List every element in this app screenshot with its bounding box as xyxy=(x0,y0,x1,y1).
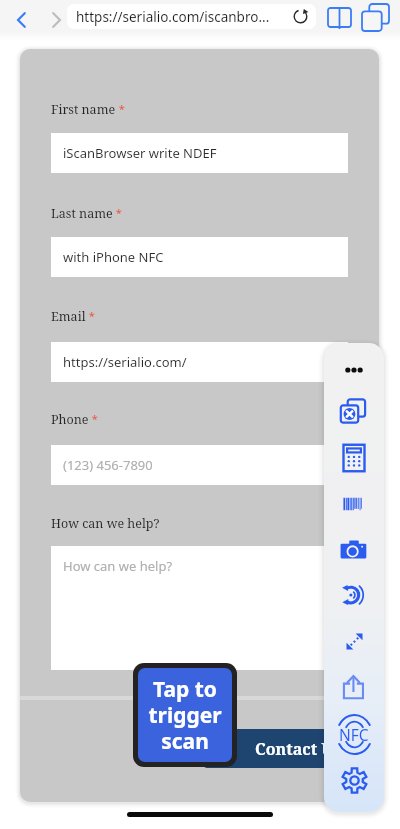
staticText: https://serialio.com/iscanbro... xyxy=(76,8,270,26)
button[interactable]: Tabs xyxy=(358,0,393,35)
staticText: (123) 456-7890 xyxy=(63,456,153,474)
staticText: Phone xyxy=(51,411,89,428)
staticText: NFC xyxy=(339,724,369,745)
staticText: * xyxy=(86,308,95,323)
staticText: iScanBrowser write NDEF xyxy=(63,144,217,162)
button[interactable]: Resize xyxy=(334,621,374,661)
button[interactable]: Reload xyxy=(288,4,313,29)
button[interactable]: Camera xyxy=(334,530,374,570)
staticText: Tap to trigger scan xyxy=(148,675,222,756)
button[interactable]: Close tab xyxy=(334,391,374,431)
staticText: Last name xyxy=(51,205,113,222)
button[interactable]: (123) 456-7890 xyxy=(51,445,348,485)
button[interactable]: NFC xyxy=(332,712,376,756)
button[interactable]: Back xyxy=(4,2,40,38)
button[interactable]: Settings xyxy=(334,760,374,800)
button[interactable]: Tap to trigger scan xyxy=(138,668,232,762)
staticText: First name xyxy=(51,101,116,118)
staticText: How can we help? xyxy=(63,557,173,575)
button[interactable]: Calculator xyxy=(334,438,374,478)
button[interactable]: iScanBrowser write NDEF xyxy=(51,133,348,173)
button[interactable]: Scan xyxy=(334,575,374,615)
staticText: with iPhone NFC xyxy=(63,248,164,266)
button[interactable]: https://serialio.com/iscanbro... xyxy=(67,4,316,29)
button[interactable]: with iPhone NFC xyxy=(51,237,348,277)
button[interactable]: How can we help? xyxy=(51,546,348,670)
button[interactable]: https://serialio.com/ xyxy=(51,342,348,382)
staticText: Email xyxy=(51,308,86,325)
staticText: Contact Us xyxy=(255,738,340,760)
button[interactable]: Share xyxy=(334,667,374,707)
button[interactable]: Barcode xyxy=(334,484,374,524)
staticText: https://serialio.com/ xyxy=(63,353,187,371)
staticText: * xyxy=(89,411,98,426)
staticText: * xyxy=(116,101,125,116)
button[interactable]: Forward xyxy=(38,2,74,38)
button[interactable]: Contact Us xyxy=(204,729,340,768)
button[interactable]: More xyxy=(337,353,371,387)
staticText: How can we help? xyxy=(51,515,160,532)
staticText: * xyxy=(113,205,122,220)
button[interactable]: Reader view xyxy=(322,0,357,35)
